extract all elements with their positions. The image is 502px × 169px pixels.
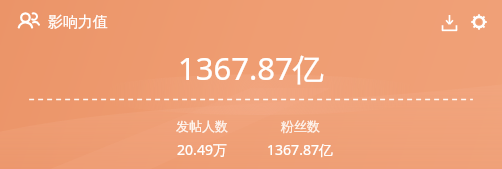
button[interactable]: 粉丝数 <box>252 118 348 159</box>
staticText: 影响力值 <box>48 13 108 32</box>
staticText: 1367.87亿 <box>267 140 333 159</box>
button[interactable]: 发帖人数 <box>154 118 250 159</box>
staticText: 1367.87亿 <box>178 47 324 89</box>
button[interactable]: Profile <box>14 9 108 35</box>
button[interactable]: Settings <box>466 9 492 35</box>
other: Profile <box>14 9 40 35</box>
staticText: 20.49万 <box>177 140 227 159</box>
button[interactable]: Download <box>436 9 462 35</box>
staticText: 发帖人数 <box>176 118 228 134</box>
staticText: 粉丝数 <box>281 118 320 134</box>
